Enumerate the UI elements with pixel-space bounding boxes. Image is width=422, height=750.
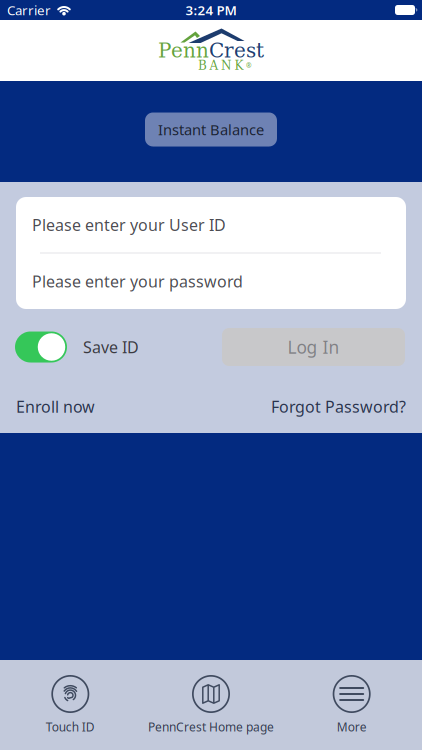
staticText: Log In xyxy=(287,335,339,358)
button[interactable]: User ID xyxy=(16,197,406,252)
staticText: Crest xyxy=(209,39,264,62)
staticText: Penn xyxy=(158,39,209,62)
staticText: B xyxy=(198,58,207,72)
staticText: PennCrest Home page xyxy=(148,719,274,735)
button[interactable]: Touch ID xyxy=(0,675,141,735)
staticText: A xyxy=(209,58,218,72)
button[interactable]: Forgot Password? xyxy=(271,396,406,417)
button[interactable]: Save ID xyxy=(15,331,67,362)
staticText: Instant Balance xyxy=(158,120,264,139)
staticText: Forgot Password? xyxy=(271,396,406,417)
button[interactable]: Instant Balance xyxy=(145,112,277,146)
button[interactable]: Log In xyxy=(222,328,405,366)
button[interactable]: More xyxy=(281,675,422,735)
staticText: ® xyxy=(246,61,252,70)
staticText: Carrier xyxy=(7,1,51,19)
staticText: Please enter your User ID xyxy=(32,214,226,235)
staticText: 3:24 PM xyxy=(185,1,236,19)
staticText: More xyxy=(337,719,367,735)
staticText: Save ID xyxy=(83,336,139,358)
staticText: Touch ID xyxy=(46,719,95,735)
button[interactable]: Password xyxy=(16,253,406,309)
staticText: K xyxy=(234,58,243,72)
staticText: Enroll now xyxy=(16,396,95,417)
button[interactable]: Enroll now xyxy=(16,396,95,417)
button[interactable]: PennCrest Home page xyxy=(141,675,281,735)
staticText: Please enter your password xyxy=(32,271,243,292)
staticText: N xyxy=(221,58,232,72)
